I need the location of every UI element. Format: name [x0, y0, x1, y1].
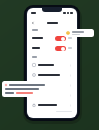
button[interactable]: [27, 70, 77, 80]
button[interactable]: [2, 81, 58, 97]
button[interactable]: [27, 100, 77, 110]
other: Alert: [66, 31, 70, 35]
button[interactable]: Toggle: [55, 36, 66, 41]
button[interactable]: [27, 80, 77, 90]
button[interactable]: Toggle: [55, 46, 66, 51]
button[interactable]: [27, 60, 77, 70]
button[interactable]: Alert: [64, 29, 94, 37]
button[interactable]: Toggle: [27, 43, 77, 53]
button[interactable]: Back: [31, 21, 35, 25]
button[interactable]: Toggle: [27, 33, 77, 43]
button[interactable]: [27, 90, 77, 100]
